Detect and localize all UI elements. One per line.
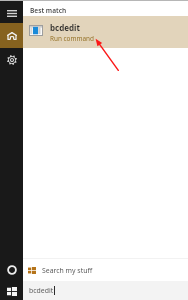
button[interactable]: Start	[0, 282, 23, 300]
button[interactable]: Cortana	[0, 259, 23, 281]
button[interactable]: bcdedit	[23, 281, 188, 300]
staticText: Run command	[50, 34, 94, 43]
staticText: bcdedit	[29, 286, 54, 295]
staticText: bcdedit	[50, 22, 80, 33]
button[interactable]: Menu	[0, 3, 23, 23]
button[interactable]: bcdedit	[23, 16, 188, 48]
staticText: Best match	[30, 6, 67, 15]
button[interactable]: Settings	[0, 48, 23, 72]
staticText: Search my stuff	[42, 266, 93, 275]
button[interactable]: Home	[0, 23, 23, 48]
button[interactable]: Search my stuff	[23, 259, 188, 281]
